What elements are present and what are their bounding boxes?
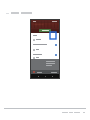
button[interactable]	[31, 57, 59, 59]
button[interactable]	[31, 37, 59, 42]
button[interactable]	[31, 47, 59, 52]
button[interactable]	[31, 52, 59, 57]
button[interactable]	[39, 29, 51, 32]
button[interactable]	[31, 42, 59, 47]
